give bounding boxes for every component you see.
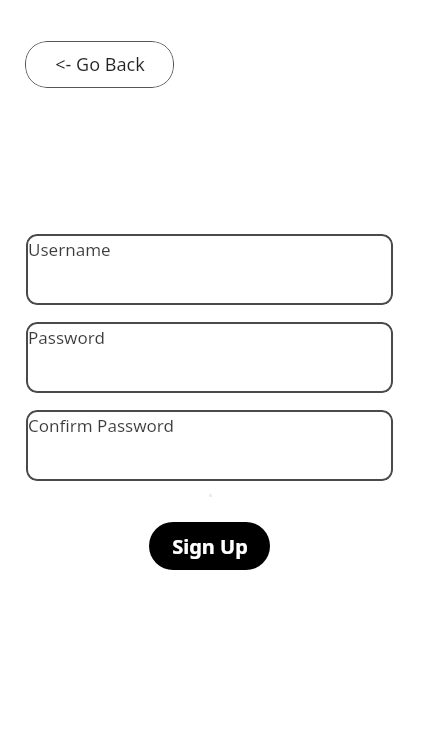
staticText: Sign Up (172, 533, 248, 560)
button[interactable]: Sign Up (149, 522, 270, 570)
staticText: Username (28, 238, 111, 261)
staticText: Confirm Password (28, 414, 174, 437)
staticText: Password (28, 326, 105, 349)
staticText: <- Go Back (55, 52, 145, 77)
button[interactable]: Password (26, 322, 393, 393)
button[interactable]: Confirm Password (26, 410, 393, 481)
button[interactable]: <- Go Back (25, 41, 174, 88)
button[interactable]: Username (26, 234, 393, 305)
